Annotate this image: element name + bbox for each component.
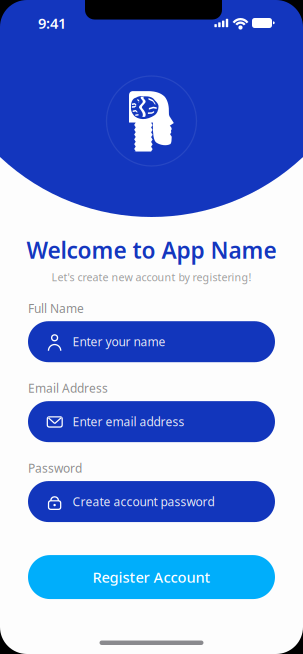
staticText: Password <box>28 460 82 476</box>
staticText: Welcome to App Name <box>26 235 276 265</box>
button[interactable]: Register Account <box>28 555 275 599</box>
staticText: Enter email address <box>72 414 184 430</box>
staticText: Full Name <box>28 300 84 316</box>
button[interactable]: Create account password <box>28 481 275 522</box>
button[interactable]: Enter email address <box>28 401 275 442</box>
staticText: 9:41 <box>38 13 66 33</box>
staticText: Create account password <box>72 494 214 509</box>
staticText: Enter your name <box>72 334 165 350</box>
staticText: Register Account <box>92 567 210 587</box>
staticText: Email Address <box>28 380 108 396</box>
button[interactable]: Enter your name <box>28 321 275 362</box>
staticText: Let's create new account by registering! <box>51 270 251 284</box>
